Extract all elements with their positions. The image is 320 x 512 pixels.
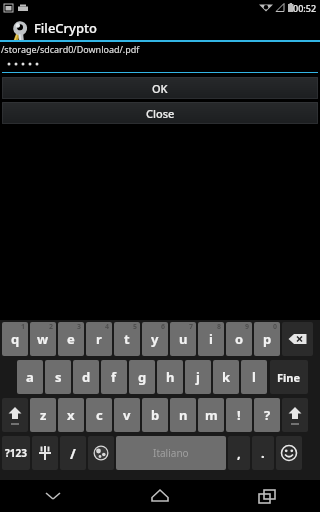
staticText: x <box>67 406 75 424</box>
staticText: 9 <box>245 322 250 332</box>
button[interactable]: p <box>254 322 280 356</box>
button[interactable]: l <box>241 360 267 394</box>
button[interactable]: i <box>198 322 224 356</box>
staticText: 00:52 <box>293 2 317 14</box>
button[interactable]: Home <box>106 480 213 512</box>
staticText: q <box>11 330 20 348</box>
staticText: a <box>26 368 34 386</box>
staticText: y <box>151 330 159 348</box>
staticText: b <box>151 406 160 424</box>
staticText: h <box>166 368 175 386</box>
button[interactable]: b <box>142 398 168 432</box>
button[interactable]: g <box>129 360 155 394</box>
staticText: n <box>179 406 188 424</box>
staticText: 6 <box>161 322 166 332</box>
staticText: 0 <box>273 322 278 332</box>
staticText: c <box>96 406 103 424</box>
button[interactable]: Emoji <box>276 436 302 470</box>
button[interactable]: ? <box>254 398 280 432</box>
staticText: z <box>40 406 47 424</box>
button[interactable]: x <box>58 398 84 432</box>
button[interactable]: y <box>142 322 168 356</box>
button[interactable]: e <box>58 322 84 356</box>
staticText: 7 <box>189 322 194 332</box>
button[interactable]: w <box>30 322 56 356</box>
button[interactable]: Shift <box>282 398 308 432</box>
button[interactable]: , <box>228 436 250 470</box>
staticText: m <box>205 406 218 424</box>
staticText: . <box>261 444 265 462</box>
button[interactable]: t <box>114 322 140 356</box>
staticText: ? <box>264 406 271 424</box>
button[interactable]: Recents <box>213 480 320 512</box>
staticText: l <box>252 368 256 386</box>
staticText: t <box>124 330 130 348</box>
staticText: , <box>237 444 241 462</box>
staticText: 5 <box>133 322 138 332</box>
staticText: p <box>263 330 272 348</box>
staticText: j <box>196 368 200 386</box>
staticText: d <box>82 368 91 386</box>
button[interactable]: . <box>252 436 274 470</box>
staticText: g <box>138 368 147 386</box>
staticText: FileCrypto <box>34 19 97 37</box>
staticText: Fine <box>277 370 301 385</box>
button[interactable]: Fine <box>270 360 308 394</box>
button[interactable]: j <box>185 360 211 394</box>
staticText: 2 <box>49 322 54 332</box>
button[interactable]: Change language <box>88 436 114 470</box>
button[interactable]: ?123 <box>2 436 30 470</box>
staticText: ! <box>237 406 241 424</box>
staticText: e <box>67 330 75 348</box>
button[interactable]: Close <box>2 102 318 124</box>
staticText: OK <box>152 81 168 96</box>
button[interactable]: h <box>157 360 183 394</box>
button[interactable]: c <box>86 398 112 432</box>
staticText: i <box>209 330 213 348</box>
button[interactable]: n <box>170 398 196 432</box>
staticText: / <box>70 444 76 463</box>
button[interactable]: Italiano <box>116 436 226 470</box>
staticText: 3 <box>77 322 82 332</box>
staticText: u <box>179 330 188 348</box>
button[interactable]: OK <box>2 77 318 99</box>
button[interactable]: / <box>60 436 86 470</box>
staticText: k <box>222 368 231 386</box>
button[interactable] <box>0 56 320 72</box>
button[interactable]: f <box>101 360 127 394</box>
staticText: Italiano <box>153 446 189 460</box>
staticText: Close <box>146 106 175 121</box>
button[interactable]: k <box>213 360 239 394</box>
button[interactable]: Shift <box>2 398 28 432</box>
button[interactable]: z <box>30 398 56 432</box>
button[interactable]: Back <box>0 480 106 512</box>
button[interactable]: u <box>170 322 196 356</box>
staticText: ?123 <box>5 446 27 460</box>
button[interactable]: Settings <box>32 436 58 470</box>
button[interactable]: Backspace <box>282 322 313 356</box>
staticText: r <box>96 330 102 348</box>
button[interactable]: d <box>73 360 99 394</box>
button[interactable]: ! <box>226 398 252 432</box>
button[interactable]: q <box>2 322 28 356</box>
button[interactable]: v <box>114 398 140 432</box>
staticText: 4 <box>105 322 110 332</box>
button[interactable]: m <box>198 398 224 432</box>
staticText: w <box>37 330 49 348</box>
button[interactable]: a <box>17 360 43 394</box>
staticText: /storage/sdcard0/Download/.pdf <box>1 43 140 55</box>
staticText: f <box>111 368 117 386</box>
staticText: 1 <box>21 322 26 332</box>
button[interactable]: s <box>45 360 71 394</box>
staticText: o <box>235 330 244 348</box>
button[interactable]: o <box>226 322 252 356</box>
button[interactable]: r <box>86 322 112 356</box>
staticText: 8 <box>217 322 222 332</box>
staticText: s <box>55 368 62 386</box>
staticText: v <box>123 406 131 424</box>
